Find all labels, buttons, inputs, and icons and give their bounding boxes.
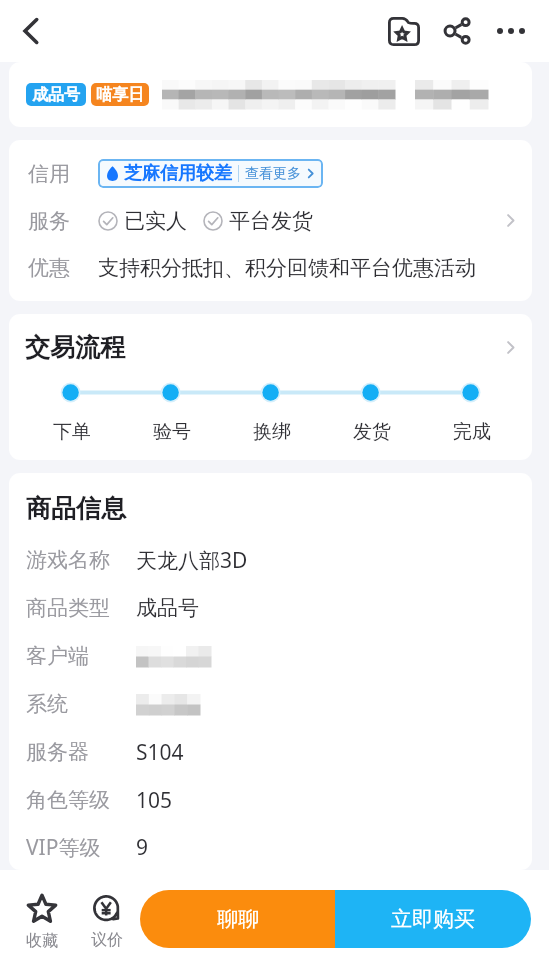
staticText: S104 <box>136 738 184 767</box>
staticText: 支持积分抵扣、积分回馈和平台优惠活动 <box>98 255 476 281</box>
staticText: 商品信息 <box>26 493 126 524</box>
staticText: 换绑 <box>253 420 291 444</box>
staticText: VIP等级 <box>26 833 101 862</box>
staticText: 验号 <box>153 420 191 444</box>
staticText: 服务 <box>28 208 70 234</box>
button[interactable]: 服务 <box>28 197 518 244</box>
staticText: 优惠 <box>28 255 70 281</box>
staticText: 芝麻信用较差 <box>124 162 232 185</box>
staticText: 下单 <box>53 420 91 444</box>
button[interactable]: 立即购买 <box>335 890 531 948</box>
staticText: 系统 <box>26 691 68 717</box>
staticText: 信用 <box>28 161 70 187</box>
staticText: 议价 <box>91 930 123 950</box>
button[interactable]: 芝麻信用较差 <box>98 159 323 188</box>
button[interactable]: 交易流程 <box>9 314 532 460</box>
button[interactable]: Favorites folder <box>377 6 431 56</box>
staticText: 交易流程 <box>25 332 125 363</box>
staticText: 客户端 <box>26 643 89 669</box>
staticText: 105 <box>136 786 173 815</box>
staticText: 收藏 <box>26 931 58 951</box>
staticText: 平台发货 <box>229 208 313 234</box>
staticText: 游戏名称 <box>26 547 110 573</box>
staticText: 商品类型 <box>26 595 110 621</box>
staticText: 9 <box>136 833 149 862</box>
staticText: 成品号 <box>32 85 80 105</box>
button[interactable]: 议价 <box>83 870 131 957</box>
staticText: 发货 <box>353 420 391 444</box>
button[interactable]: 聊聊 <box>140 890 335 948</box>
staticText: 已实人 <box>124 208 187 234</box>
staticText: 完成 <box>453 420 491 444</box>
button[interactable]: 收藏 <box>0 870 83 957</box>
staticText: 成品号 <box>136 595 199 621</box>
staticText: 喵享日 <box>96 85 144 105</box>
staticText: 服务器 <box>26 739 89 765</box>
button[interactable]: Share <box>431 6 485 56</box>
button[interactable]: Back <box>6 6 56 56</box>
staticText: 查看更多 <box>245 165 301 183</box>
button[interactable]: More options <box>485 6 537 56</box>
staticText: 聊聊 <box>217 906 259 932</box>
staticText: 角色等级 <box>26 787 110 813</box>
staticText: 立即购买 <box>391 906 475 932</box>
staticText: 天龙八部3D <box>136 546 248 575</box>
